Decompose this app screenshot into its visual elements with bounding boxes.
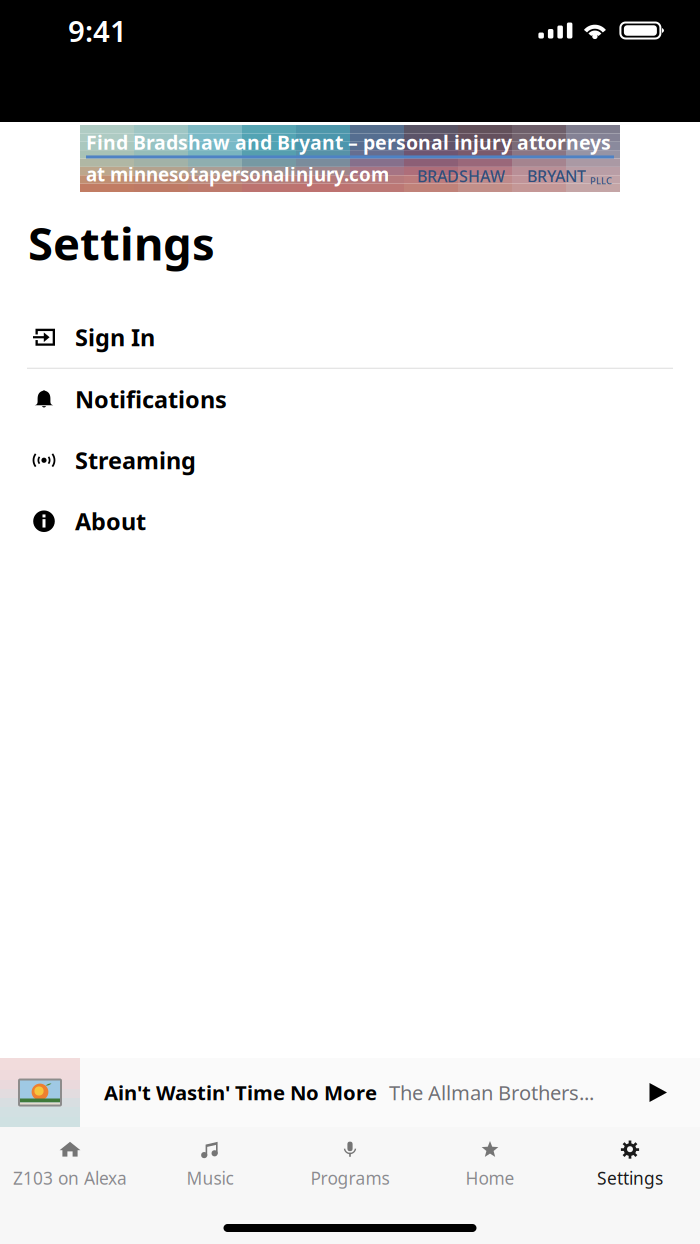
staticText: Home [465, 1166, 514, 1190]
staticText: Notifications [75, 383, 227, 415]
staticText: The Allman Brothers... [389, 1079, 594, 1106]
staticText: Settings [28, 212, 215, 274]
staticText: About [75, 505, 146, 537]
button[interactable]: Notifications [0, 369, 700, 430]
staticText: Z103 on Alexa [13, 1166, 127, 1190]
button[interactable]: Home [420, 1127, 560, 1189]
staticText: BRYANT [527, 165, 586, 187]
staticText: BRADSHAW [417, 165, 505, 187]
staticText: at minnesotapersonalinjury.com [86, 161, 389, 187]
staticText: 9:41 [68, 10, 127, 50]
button[interactable]: Settings [560, 1127, 700, 1189]
button[interactable]: Music [140, 1127, 280, 1189]
staticText: PLLC [590, 174, 612, 187]
staticText: Sign In [75, 321, 155, 353]
staticText: Ain't Wastin' Time No More [104, 1079, 377, 1106]
button[interactable]: About [0, 491, 700, 552]
button[interactable]: Programs [280, 1127, 420, 1189]
staticText: Streaming [75, 444, 196, 476]
button[interactable]: Z103 on Alexa [0, 1127, 140, 1189]
button[interactable]: Advertisement: Find Bradshaw and Bryant … [80, 125, 620, 192]
button[interactable]: Now playing: Ain't Wastin' Time No More,… [0, 1058, 700, 1127]
button[interactable]: Sign In [0, 307, 700, 368]
staticText: Music [186, 1166, 233, 1190]
staticText: Find Bradshaw and Bryant – personal inju… [86, 129, 611, 155]
button[interactable]: Streaming [0, 430, 700, 491]
staticText: Settings [597, 1166, 663, 1190]
staticText: Programs [310, 1166, 389, 1190]
